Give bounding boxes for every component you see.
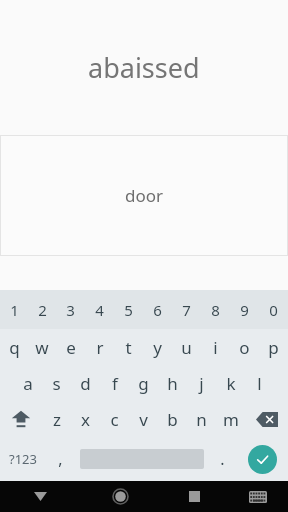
button[interactable]: 7 bbox=[172, 290, 201, 329]
button[interactable]: y bbox=[143, 329, 172, 365]
button[interactable]: 5 bbox=[114, 290, 143, 329]
button[interactable]: m bbox=[216, 401, 245, 437]
staticText: 8 bbox=[211, 300, 220, 320]
staticText: w bbox=[35, 336, 49, 359]
staticText: j bbox=[199, 372, 204, 395]
button[interactable]: z bbox=[42, 401, 71, 437]
button[interactable]: 8 bbox=[201, 290, 230, 329]
button[interactable]: u bbox=[172, 329, 201, 365]
staticText: y bbox=[153, 336, 162, 359]
staticText: v bbox=[139, 408, 148, 431]
button[interactable]: ?123 bbox=[0, 437, 46, 481]
button[interactable]: Home bbox=[80, 481, 160, 512]
staticText: 0 bbox=[269, 300, 278, 320]
staticText: z bbox=[53, 408, 61, 431]
button[interactable]: 2 bbox=[28, 290, 56, 329]
staticText: r bbox=[96, 336, 104, 359]
button[interactable]: h bbox=[158, 365, 187, 401]
staticText: i bbox=[213, 336, 218, 359]
staticText: door bbox=[125, 184, 164, 207]
button[interactable]: c bbox=[100, 401, 129, 437]
button[interactable]: Hide keyboard bbox=[0, 481, 80, 512]
button[interactable]: , bbox=[46, 437, 75, 481]
staticText: x bbox=[81, 408, 90, 431]
button[interactable]: v bbox=[129, 401, 158, 437]
staticText: 9 bbox=[240, 300, 249, 320]
button[interactable]: t bbox=[114, 329, 143, 365]
staticText: ?123 bbox=[9, 450, 37, 468]
button[interactable]: 0 bbox=[259, 290, 288, 329]
staticText: 6 bbox=[153, 300, 162, 320]
staticText: 7 bbox=[182, 300, 191, 320]
staticText: b bbox=[167, 408, 178, 431]
button[interactable]: o bbox=[230, 329, 259, 365]
staticText: l bbox=[257, 372, 262, 395]
button[interactable]: i bbox=[201, 329, 230, 365]
staticText: c bbox=[110, 408, 119, 431]
staticText: 2 bbox=[38, 300, 47, 320]
button[interactable]: n bbox=[187, 401, 216, 437]
staticText: a bbox=[23, 372, 33, 395]
button[interactable]: 1 bbox=[0, 290, 28, 329]
button[interactable]: Enter bbox=[237, 437, 288, 481]
staticText: g bbox=[138, 372, 149, 395]
button[interactable]: 6 bbox=[143, 290, 172, 329]
button[interactable]: x bbox=[71, 401, 100, 437]
button[interactable]: Recents bbox=[160, 481, 228, 512]
button[interactable]: a bbox=[13, 365, 42, 401]
button[interactable]: r bbox=[85, 329, 114, 365]
staticText: s bbox=[52, 372, 61, 395]
button[interactable]: k bbox=[216, 365, 245, 401]
button[interactable]: 3 bbox=[56, 290, 85, 329]
staticText: u bbox=[181, 336, 192, 359]
button[interactable]: q bbox=[0, 329, 28, 365]
staticText: t bbox=[125, 336, 132, 359]
staticText: 5 bbox=[124, 300, 133, 320]
button[interactable]: s bbox=[42, 365, 71, 401]
button[interactable]: Shift bbox=[0, 401, 42, 437]
button[interactable]: p bbox=[259, 329, 288, 365]
button[interactable]: f bbox=[100, 365, 129, 401]
staticText: q bbox=[9, 336, 20, 359]
staticText: f bbox=[112, 372, 118, 395]
button[interactable]: door bbox=[0, 135, 288, 256]
staticText: 3 bbox=[66, 300, 75, 320]
staticText: , bbox=[58, 448, 63, 470]
staticText: d bbox=[80, 372, 91, 395]
staticText: 4 bbox=[95, 300, 104, 320]
button[interactable]: b bbox=[158, 401, 187, 437]
staticText: n bbox=[196, 408, 207, 431]
button[interactable]: Backspace bbox=[245, 401, 288, 437]
button[interactable]: g bbox=[129, 365, 158, 401]
staticText: h bbox=[167, 372, 178, 395]
button[interactable]: 9 bbox=[230, 290, 259, 329]
button[interactable]: d bbox=[71, 365, 100, 401]
staticText: k bbox=[226, 372, 236, 395]
staticText: 1 bbox=[10, 300, 19, 320]
button[interactable]: j bbox=[187, 365, 216, 401]
staticText: abaissed bbox=[88, 49, 200, 86]
button[interactable]: . bbox=[208, 437, 237, 481]
staticText: o bbox=[239, 336, 250, 359]
button[interactable]: l bbox=[245, 365, 274, 401]
button[interactable]: Space bbox=[75, 437, 208, 481]
button[interactable]: e bbox=[56, 329, 85, 365]
button[interactable]: 4 bbox=[85, 290, 114, 329]
button[interactable]: Switch keyboard bbox=[228, 481, 288, 512]
button[interactable]: w bbox=[28, 329, 56, 365]
staticText: . bbox=[220, 448, 225, 470]
staticText: e bbox=[66, 336, 76, 359]
staticText: m bbox=[223, 408, 239, 431]
staticText: p bbox=[268, 336, 279, 359]
